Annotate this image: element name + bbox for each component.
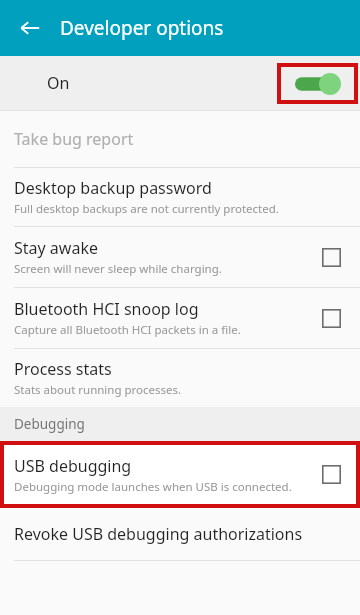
button[interactable]: Bluetooth HCI snoop log (0, 288, 360, 348)
other: Toggle developer options (277, 63, 358, 104)
staticText: On (47, 72, 70, 94)
button[interactable]: Stay awake (0, 227, 360, 287)
staticText: Take bug report (14, 128, 134, 150)
button[interactable]: Revoke USB debugging authorizations (0, 508, 360, 560)
button[interactable]: Back (8, 6, 52, 50)
staticText: Desktop backup password (14, 177, 212, 199)
staticText: Stay awake (14, 237, 98, 259)
staticText: Screen will never sleep while charging. (14, 261, 222, 277)
button[interactable]: On (0, 56, 360, 110)
staticText: Stats about running processes. (14, 382, 182, 398)
button[interactable]: Take bug report (0, 111, 360, 167)
button[interactable]: Desktop backup password (0, 168, 360, 226)
button[interactable]: Process stats (0, 349, 360, 407)
staticText: USB debugging (14, 455, 132, 477)
staticText: Debugging (14, 415, 85, 433)
button[interactable]: USB debugging (0, 441, 360, 508)
staticText: Full desktop backups are not currently p… (14, 201, 279, 217)
staticText: Revoke USB debugging authorizations (14, 523, 303, 545)
staticText: Capture all Bluetooth HCI packets in a f… (14, 322, 241, 338)
staticText: Developer options (60, 15, 224, 41)
staticText: Process stats (14, 358, 112, 380)
staticText: Bluetooth HCI snoop log (14, 298, 199, 320)
staticText: Debugging mode launches when USB is conn… (14, 479, 292, 495)
